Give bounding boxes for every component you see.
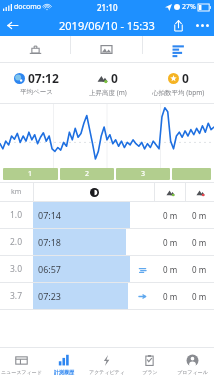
staticText: 上昇高度 (m) bbox=[89, 88, 127, 97]
staticText: 1 bbox=[28, 169, 33, 179]
staticText: 27% bbox=[182, 2, 196, 12]
staticText: 0 m bbox=[192, 210, 207, 221]
button[interactable]: Share bbox=[166, 14, 190, 36]
button[interactable]: Back bbox=[0, 14, 24, 36]
button[interactable]: 07:12 bbox=[0, 63, 72, 103]
staticText: 21:10 bbox=[97, 2, 118, 13]
button[interactable]: 2.0 bbox=[0, 229, 214, 255]
button[interactable]: 1.0 bbox=[0, 202, 214, 228]
staticText: 0 m bbox=[163, 210, 178, 221]
staticText: プラン bbox=[142, 369, 158, 375]
staticText: 0 bbox=[182, 70, 189, 86]
staticText: 1.0 bbox=[10, 209, 23, 221]
staticText: 2019/06/10 - 15:33 bbox=[59, 18, 155, 33]
staticText: 07:12 bbox=[28, 70, 59, 86]
button[interactable]: Splits bbox=[143, 36, 214, 62]
staticText: 0 m bbox=[163, 291, 178, 302]
staticText: 2.0 bbox=[10, 236, 23, 248]
staticText: 0 m bbox=[163, 264, 178, 275]
button[interactable]: ニュースフィード bbox=[0, 348, 42, 380]
button[interactable]: Shoes bbox=[0, 36, 70, 62]
button[interactable]: Photos bbox=[71, 36, 142, 62]
staticText: docomo bbox=[14, 2, 41, 12]
staticText: 2 bbox=[85, 169, 90, 179]
button[interactable]: 3.0 bbox=[0, 256, 214, 282]
staticText: 0 bbox=[111, 70, 118, 86]
staticText: 0 m bbox=[192, 291, 207, 302]
staticText: 3.0 bbox=[10, 263, 23, 275]
staticText: 07:14 bbox=[38, 209, 62, 221]
staticText: アクティビティ bbox=[89, 369, 125, 375]
button[interactable]: 2 bbox=[60, 168, 114, 180]
staticText: 07:23 bbox=[38, 290, 62, 302]
button[interactable]: 3 bbox=[116, 168, 170, 180]
staticText: 計測履歴 bbox=[54, 369, 74, 375]
staticText: 3 bbox=[141, 169, 146, 179]
button[interactable]: More options bbox=[190, 14, 214, 36]
staticText: km bbox=[11, 187, 22, 197]
button[interactable]: プロフィール bbox=[171, 348, 214, 380]
staticText: ニュースフィード bbox=[1, 369, 42, 375]
staticText: 06:57 bbox=[38, 263, 62, 275]
button[interactable]: 0 bbox=[72, 63, 143, 103]
button[interactable]: アクティビティ bbox=[85, 348, 128, 380]
staticText: 0 m bbox=[192, 237, 207, 248]
staticText: 心拍数平均 (bpm) bbox=[152, 88, 205, 97]
button[interactable]: 1 bbox=[3, 168, 58, 180]
staticText: 3.7 bbox=[10, 290, 23, 302]
button[interactable]: 0 bbox=[143, 63, 214, 103]
staticText: 07:18 bbox=[38, 236, 62, 248]
staticText: 0 m bbox=[163, 237, 178, 248]
staticText: 0 m bbox=[192, 264, 207, 275]
staticText: プロフィール bbox=[177, 369, 208, 375]
button[interactable]: 計測履歴 bbox=[42, 348, 85, 380]
button[interactable]: プラン bbox=[128, 348, 171, 380]
button[interactable]: 3.7 bbox=[0, 283, 214, 309]
staticText: 平均ペース bbox=[20, 88, 53, 96]
